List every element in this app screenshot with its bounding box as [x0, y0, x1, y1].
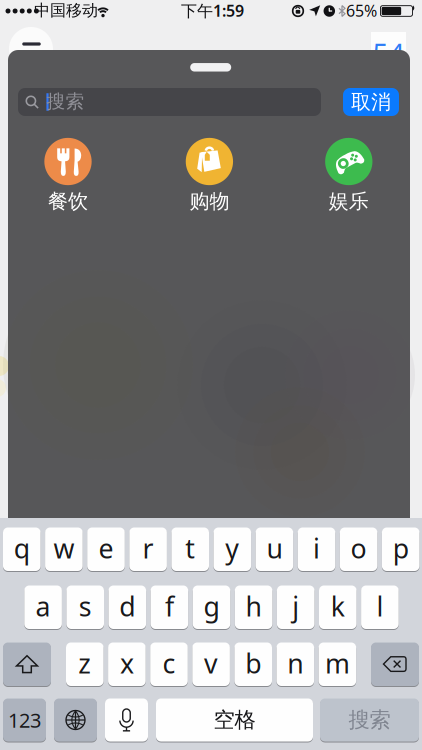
- button[interactable]: m: [319, 642, 356, 687]
- button[interactable]: 搜索: [320, 698, 419, 742]
- button[interactable]: l: [361, 585, 399, 630]
- staticText: l: [376, 588, 383, 624]
- button[interactable]: i: [298, 527, 335, 572]
- staticText: n: [287, 645, 303, 681]
- button[interactable]: t: [171, 527, 209, 572]
- staticText: v: [204, 645, 218, 681]
- button[interactable]: g: [193, 585, 230, 630]
- button[interactable]: 购物: [164, 138, 254, 213]
- button[interactable]: 取消: [343, 88, 399, 116]
- button[interactable]: Numbers: [3, 698, 46, 742]
- button[interactable]: x: [108, 642, 146, 687]
- staticText: m: [325, 645, 350, 681]
- button[interactable]: f: [151, 585, 188, 630]
- button[interactable]: 搜索: [18, 88, 321, 116]
- button[interactable]: q: [3, 527, 41, 572]
- staticText: d: [119, 588, 135, 624]
- button[interactable]: n: [276, 642, 314, 687]
- button[interactable]: s: [66, 585, 104, 630]
- staticText: 购物: [189, 189, 229, 214]
- button[interactable]: Next keyboard: [54, 698, 97, 742]
- staticText: 65%: [346, 0, 377, 21]
- staticText: w: [53, 530, 74, 566]
- staticText: k: [331, 588, 345, 624]
- staticText: t: [185, 530, 195, 566]
- button[interactable]: 餐饮: [23, 138, 113, 213]
- button[interactable]: u: [256, 527, 293, 572]
- staticText: 取消: [351, 90, 391, 114]
- staticText: 下午1:59: [181, 0, 244, 21]
- staticText: r: [143, 530, 154, 566]
- staticText: z: [78, 645, 91, 681]
- staticText: i: [313, 530, 320, 566]
- staticText: x: [120, 645, 134, 681]
- button[interactable]: j: [277, 585, 314, 630]
- button[interactable]: k: [319, 585, 357, 630]
- button[interactable]: v: [192, 642, 230, 687]
- button[interactable]: a: [24, 585, 62, 630]
- button[interactable]: b: [234, 642, 272, 687]
- button[interactable]: y: [213, 527, 251, 572]
- button[interactable]: z: [66, 642, 104, 687]
- button[interactable]: e: [87, 527, 125, 572]
- staticText: y: [225, 530, 239, 566]
- button[interactable]: o: [340, 527, 377, 572]
- staticText: 中国移动: [34, 1, 98, 20]
- button[interactable]: r: [129, 527, 167, 572]
- staticText: c: [162, 645, 175, 681]
- staticText: h: [246, 588, 262, 624]
- staticText: f: [165, 588, 174, 624]
- button[interactable]: 空格: [156, 698, 313, 742]
- button[interactable]: h: [235, 585, 272, 630]
- button[interactable]: Dictate: [105, 698, 148, 742]
- staticText: 搜索: [348, 707, 390, 733]
- staticText: q: [14, 530, 30, 566]
- staticText: s: [79, 588, 92, 624]
- button[interactable]: w: [45, 527, 83, 572]
- button[interactable]: p: [382, 527, 419, 572]
- button[interactable]: 娱乐: [304, 138, 394, 213]
- button[interactable]: Shift: [3, 642, 51, 687]
- staticText: 搜索: [46, 90, 84, 113]
- staticText: 空格: [213, 707, 255, 733]
- button[interactable]: d: [108, 585, 146, 630]
- staticText: p: [393, 530, 409, 566]
- staticText: e: [98, 530, 113, 566]
- button[interactable]: c: [150, 642, 188, 687]
- staticText: 123: [8, 707, 41, 733]
- staticText: a: [36, 588, 51, 624]
- staticText: u: [266, 530, 282, 566]
- staticText: o: [351, 530, 367, 566]
- staticText: g: [203, 588, 219, 624]
- staticText: 娱乐: [329, 189, 369, 214]
- staticText: 餐饮: [48, 189, 88, 214]
- staticText: b: [245, 645, 261, 681]
- button[interactable]: Delete: [371, 642, 419, 687]
- staticText: j: [292, 588, 299, 624]
- staticText: 54: [372, 34, 404, 72]
